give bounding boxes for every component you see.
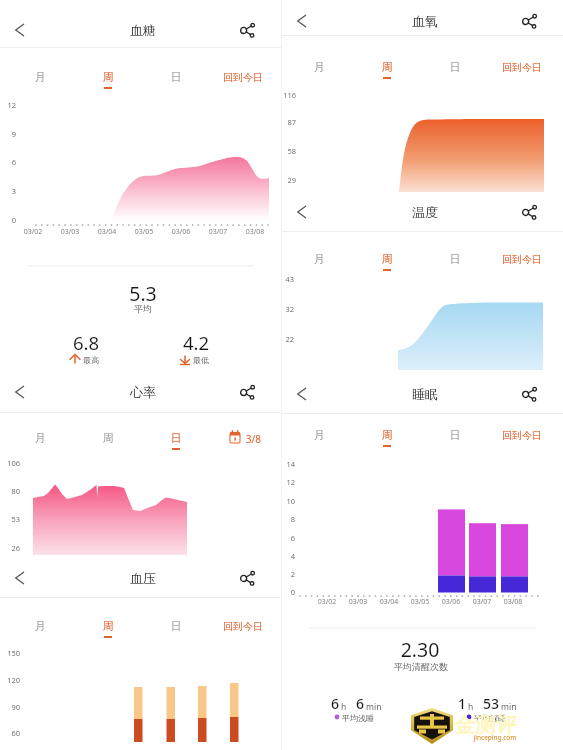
button[interactable] <box>92 64 124 90</box>
staticText: 58 <box>176 146 296 156</box>
staticText: 60 <box>0 728 20 738</box>
staticText: 8 <box>175 514 295 524</box>
staticText: 周 <box>327 252 447 266</box>
staticText: 血氧 <box>365 13 485 29</box>
button[interactable] <box>24 613 56 639</box>
button[interactable]: Share <box>514 5 546 37</box>
button[interactable] <box>160 613 192 639</box>
staticText: 日 <box>395 60 515 74</box>
staticText: 2.30 <box>360 636 480 663</box>
staticText: 87 <box>176 117 296 127</box>
button[interactable]: Back <box>287 6 317 36</box>
button[interactable] <box>500 54 548 80</box>
staticText: 106 <box>0 458 20 468</box>
staticText: 03/08 <box>195 227 315 237</box>
button[interactable] <box>371 54 403 80</box>
staticText: jinceping.com <box>435 733 555 742</box>
button[interactable]: Share <box>514 196 546 228</box>
staticText: 53 <box>0 514 20 524</box>
button[interactable] <box>24 64 56 90</box>
button[interactable]: Back <box>287 197 317 227</box>
staticText: h <box>468 701 474 713</box>
staticText: 9 <box>0 129 16 139</box>
staticText: 周 <box>327 60 447 74</box>
staticText: 12 <box>175 477 295 487</box>
button[interactable] <box>439 246 471 272</box>
staticText: 120 <box>0 675 20 685</box>
staticText: 53 <box>379 694 499 713</box>
staticText: 平均深睡 <box>430 713 550 723</box>
staticText: 6 <box>175 533 295 543</box>
staticText: 29 <box>176 175 296 185</box>
button[interactable] <box>439 422 471 448</box>
staticText: 22 <box>174 334 294 344</box>
staticText: 最高 <box>83 355 99 365</box>
staticText: 回到今日 <box>143 620 263 633</box>
staticText: 80 <box>0 486 20 496</box>
staticText: 26 <box>0 543 20 553</box>
button[interactable] <box>221 64 269 90</box>
staticText: 睡眠 <box>365 386 485 402</box>
staticText: 平均 <box>83 303 203 314</box>
button[interactable] <box>500 246 548 272</box>
staticText: 03/02 <box>0 227 93 237</box>
staticText: 月 <box>0 619 100 633</box>
staticText: 03/07 <box>422 597 542 607</box>
staticText: 03/06 <box>121 227 241 237</box>
button[interactable]: Back <box>287 379 317 409</box>
button[interactable] <box>439 54 471 80</box>
staticText: 03/04 <box>329 597 449 607</box>
button[interactable] <box>92 613 124 639</box>
staticText: 03/07 <box>158 227 278 237</box>
staticText: 4.2 <box>136 330 256 355</box>
staticText: 90 <box>0 702 20 712</box>
staticText: 03/03 <box>10 227 130 237</box>
staticText: 6.8 <box>26 330 146 355</box>
button[interactable] <box>219 425 267 451</box>
button[interactable]: Share <box>232 562 264 594</box>
staticText: min <box>501 701 517 713</box>
staticText: 03/04 <box>47 227 167 237</box>
staticText: 月 <box>0 70 100 84</box>
staticText: 03/06 <box>391 597 511 607</box>
button[interactable] <box>500 422 548 448</box>
staticText: 日 <box>116 70 236 84</box>
staticText: 周 <box>48 619 168 633</box>
staticText: 回到今日 <box>422 61 542 74</box>
button[interactable]: Back <box>5 377 35 407</box>
button[interactable] <box>371 246 403 272</box>
staticText: 最低 <box>193 355 209 365</box>
staticText: 周 <box>327 428 447 442</box>
button[interactable] <box>92 425 124 451</box>
staticText: 回到今日 <box>143 71 263 84</box>
staticText: 月 <box>0 431 100 445</box>
button[interactable] <box>160 64 192 90</box>
staticText: 03/02 <box>267 597 387 607</box>
button[interactable] <box>303 422 335 448</box>
button[interactable] <box>160 425 192 451</box>
staticText: 6 <box>244 694 364 713</box>
button[interactable] <box>303 246 335 272</box>
staticText: 周 <box>48 70 168 84</box>
button[interactable] <box>371 422 403 448</box>
staticText: 日 <box>116 619 236 633</box>
staticText: 03/05 <box>360 597 480 607</box>
button[interactable] <box>303 54 335 80</box>
button[interactable] <box>24 425 56 451</box>
staticText: 43 <box>174 274 294 284</box>
button[interactable]: Share <box>514 378 546 410</box>
staticText: 3/8 <box>141 432 261 446</box>
staticText: 月 <box>259 428 379 442</box>
staticText: 10 <box>175 496 295 506</box>
staticText: 4 <box>175 551 295 561</box>
staticText: 116 <box>176 90 296 100</box>
staticText: 平均浅睡 <box>298 713 418 723</box>
button[interactable]: Back <box>5 15 35 45</box>
button[interactable] <box>221 613 269 639</box>
staticText: 2 <box>175 569 295 579</box>
staticText: 温度 <box>365 204 485 220</box>
button[interactable]: Share <box>232 376 264 408</box>
button[interactable]: Share <box>232 14 264 46</box>
staticText: 月 <box>259 60 379 74</box>
button[interactable]: Back <box>5 563 35 593</box>
